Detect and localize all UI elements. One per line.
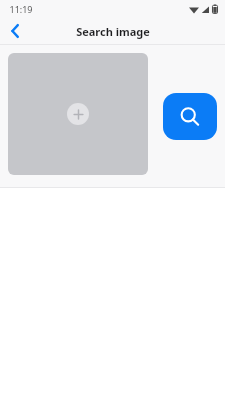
staticText: Search image [76,24,150,39]
button[interactable]: Search [163,93,217,140]
button[interactable]: Add image [8,53,148,175]
button[interactable]: Back [0,18,30,44]
staticText: 11:19 [9,3,33,15]
